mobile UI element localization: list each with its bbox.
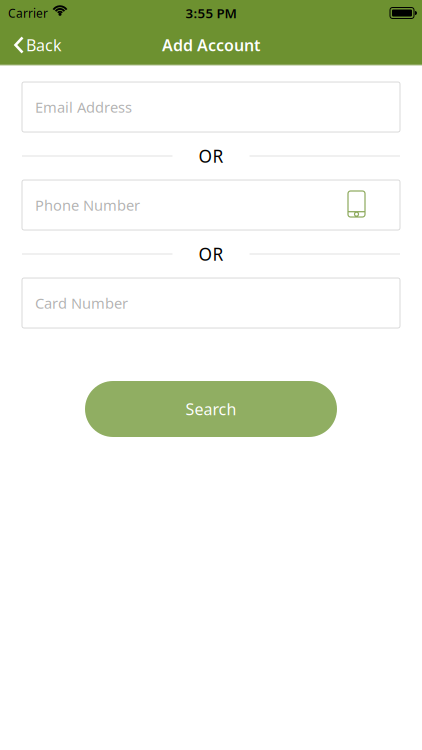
staticText: OR <box>198 242 223 265</box>
staticText: Card Number <box>35 293 128 313</box>
staticText: Phone Number <box>35 195 140 215</box>
staticText: Back <box>26 34 62 56</box>
staticText: Carrier <box>8 5 48 21</box>
staticText: Search <box>185 398 236 420</box>
button[interactable]: Email Address <box>22 82 400 132</box>
staticText: 3:55 PM <box>185 4 236 22</box>
button[interactable]: Phone Number <box>22 180 400 230</box>
staticText: OR <box>198 144 223 167</box>
staticText: Add Account <box>162 34 260 56</box>
button[interactable]: Back <box>0 28 62 62</box>
button[interactable]: Search <box>85 381 337 437</box>
staticText: Email Address <box>35 97 132 117</box>
button[interactable]: Card Number <box>22 278 400 328</box>
